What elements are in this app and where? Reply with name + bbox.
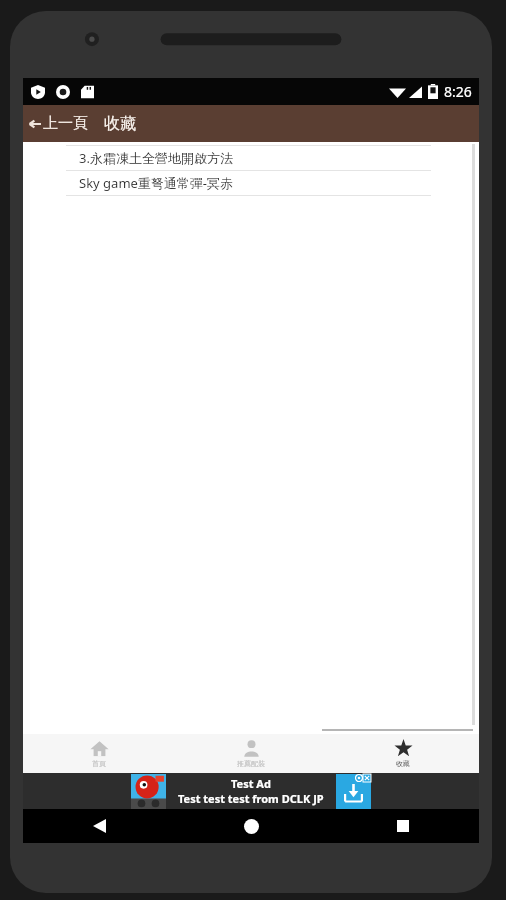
staticText: 推薦配裝 (237, 759, 265, 768)
staticText: 上一頁 (43, 114, 88, 133)
button[interactable]: Home (175, 809, 327, 843)
staticText: 收藏 (396, 759, 410, 768)
staticText: 收藏 (104, 114, 136, 134)
button[interactable]: 收藏 (327, 734, 479, 773)
staticText: Test test test from DCLK JP (178, 791, 324, 806)
staticText: 3.永霜凍土全營地開啟方法 (79, 149, 233, 167)
button[interactable]: 推薦配裝 (175, 734, 327, 773)
button[interactable]: Sky game重弩通常彈-冥赤 (66, 171, 431, 195)
button[interactable]: Install (336, 774, 371, 809)
staticText: Sky game重弩通常彈-冥赤 (79, 174, 234, 192)
button[interactable]: Test Ad (131, 773, 371, 809)
staticText: 8:26 (444, 82, 472, 101)
staticText: 首頁 (92, 759, 106, 768)
staticText: Test Ad (231, 776, 271, 791)
button[interactable]: 首頁 (23, 734, 175, 773)
button[interactable]: Recents (327, 809, 479, 843)
button[interactable]: 上一頁 (23, 109, 92, 138)
button[interactable]: 3.永霜凍土全營地開啟方法 (66, 146, 431, 170)
button[interactable]: Back (23, 809, 175, 843)
